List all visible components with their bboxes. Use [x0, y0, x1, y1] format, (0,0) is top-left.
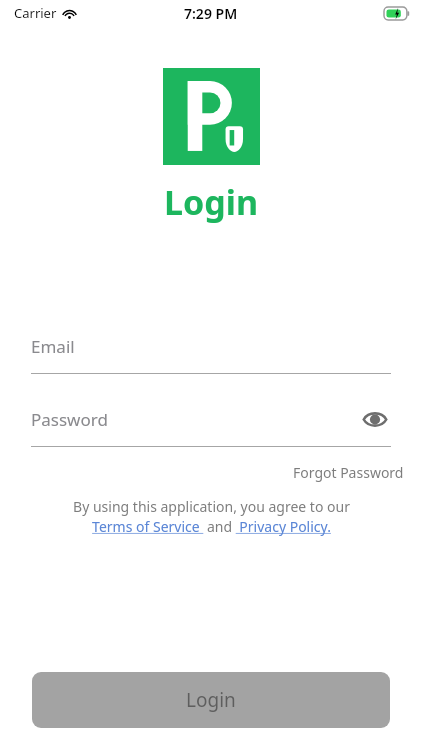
- button[interactable]: Email: [31, 329, 391, 363]
- staticText: Login: [164, 179, 259, 225]
- staticText: Login: [186, 687, 236, 713]
- staticText: 7:29 PM: [184, 4, 238, 23]
- button[interactable]: Login: [32, 672, 390, 728]
- staticText: Forgot Password: [293, 463, 404, 482]
- staticText: Carrier: [14, 4, 57, 22]
- staticText: Email: [31, 335, 75, 358]
- button[interactable]: By using this application, you agree to …: [73, 497, 350, 536]
- staticText: Password: [31, 408, 108, 431]
- button[interactable]: Password: [31, 402, 391, 436]
- button[interactable]: Show password: [359, 403, 391, 435]
- button[interactable]: Forgot Password: [293, 459, 404, 486]
